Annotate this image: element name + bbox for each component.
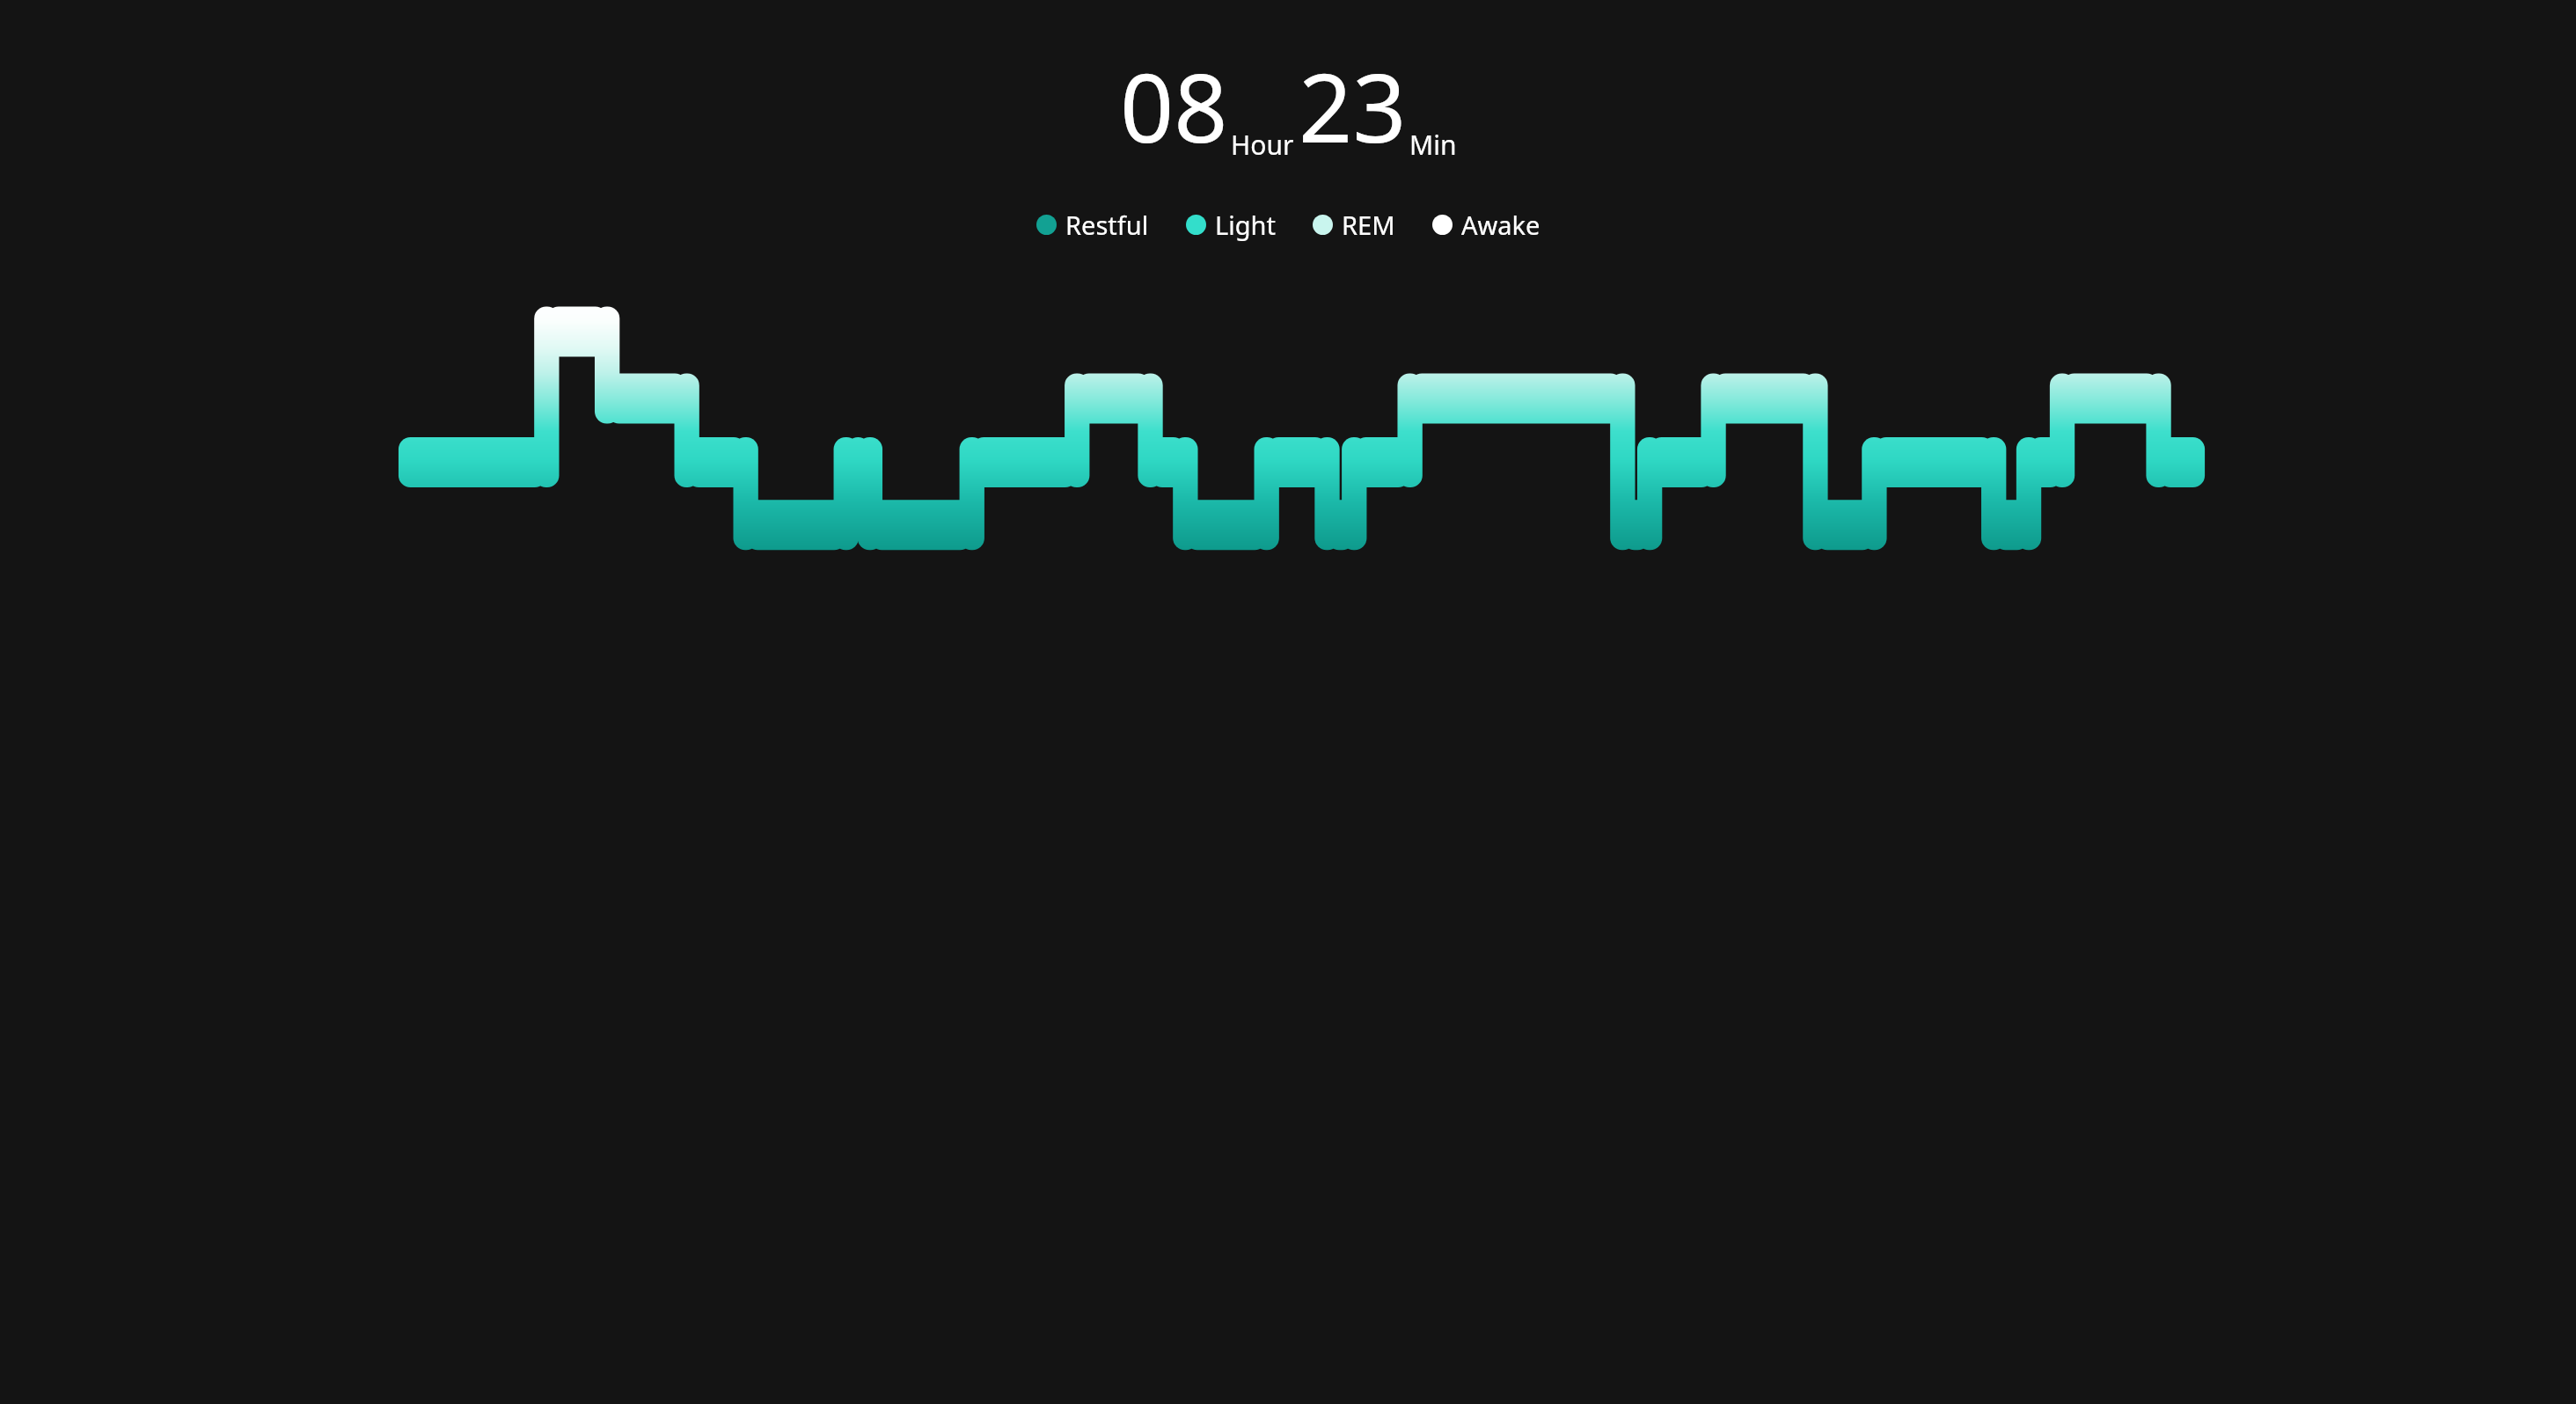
button[interactable]: Light bbox=[1184, 204, 1277, 245]
button[interactable]: Sleep stage timeline chart bbox=[0, 298, 2576, 589]
button[interactable]: Awake bbox=[1431, 204, 1542, 245]
staticText: Light bbox=[1215, 208, 1276, 242]
staticText: Hour bbox=[1231, 127, 1294, 163]
staticText: Min bbox=[1409, 127, 1457, 163]
staticText: 23 bbox=[1299, 42, 1407, 171]
staticText: Restful bbox=[1065, 208, 1149, 242]
staticText: REM bbox=[1342, 208, 1395, 242]
staticText: 08 bbox=[1120, 42, 1228, 171]
button[interactable]: REM bbox=[1311, 204, 1397, 245]
button[interactable]: Restful bbox=[1035, 204, 1151, 245]
staticText: Awake bbox=[1461, 208, 1540, 242]
